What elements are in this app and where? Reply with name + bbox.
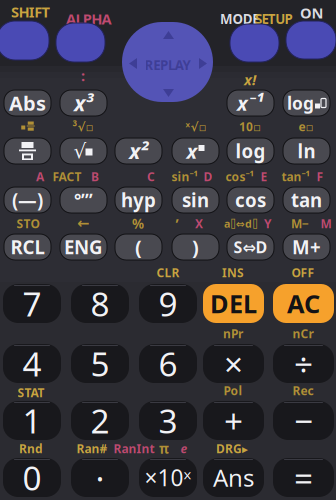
- staticText: cos: [235, 188, 266, 212]
- button[interactable]: x²: [115, 138, 162, 164]
- staticText: log: [287, 91, 314, 114]
- staticText: M−: [291, 215, 309, 231]
- button[interactable]: log: [227, 138, 274, 164]
- staticText: ³√▫: [72, 118, 93, 134]
- staticText: nPr: [223, 325, 243, 341]
- staticText: π: [159, 440, 169, 457]
- button[interactable]: cos: [227, 187, 274, 213]
- staticText: tan⁻¹: [281, 168, 310, 184]
- staticText: log: [235, 139, 265, 163]
- button[interactable]: sin: [172, 187, 219, 213]
- button[interactable]: ln: [283, 138, 330, 164]
- staticText: F: [316, 168, 323, 184]
- button[interactable]: 9: [139, 284, 197, 323]
- button[interactable]: Square root: [60, 138, 107, 164]
- button[interactable]: Replay directional pad: [122, 22, 213, 102]
- button[interactable]: x³: [60, 90, 107, 116]
- staticText: sin⁻¹: [171, 168, 198, 184]
- staticText: %: [132, 215, 144, 232]
- staticText: 6: [158, 341, 177, 386]
- staticText: nCr: [292, 325, 313, 341]
- button[interactable]: 1: [3, 401, 61, 440]
- button[interactable]: 0: [3, 458, 61, 497]
- staticText: Ran#: [76, 440, 107, 456]
- staticText: Ans: [213, 462, 254, 493]
- button[interactable]: +: [203, 401, 264, 440]
- button[interactable]: ÷: [273, 344, 334, 383]
- button[interactable]: ×10ˣ: [139, 458, 197, 497]
- staticText: Y: [264, 215, 272, 231]
- staticText: °’”: [74, 188, 93, 211]
- staticText: −: [294, 398, 313, 443]
- button[interactable]: °’”: [60, 187, 107, 213]
- button[interactable]: AC: [273, 284, 334, 323]
- staticText: ): [192, 234, 199, 260]
- staticText: ˣ√▫: [185, 118, 206, 134]
- button[interactable]: ×: [203, 344, 264, 383]
- staticText: 1: [22, 398, 41, 443]
- button[interactable]: −: [273, 401, 334, 440]
- button[interactable]: ·: [71, 458, 129, 497]
- button[interactable]: S⇔D: [227, 234, 274, 260]
- button[interactable]: Fraction: [4, 138, 51, 164]
- staticText: AC: [287, 287, 320, 320]
- staticText: 0: [22, 455, 41, 500]
- staticText: RCL: [10, 235, 44, 259]
- button[interactable]: RCL: [4, 234, 51, 260]
- staticText: 3: [158, 398, 177, 443]
- button[interactable]: Shift: [0, 21, 49, 60]
- staticText: 2: [90, 398, 109, 443]
- button[interactable]: Alpha: [56, 23, 105, 62]
- staticText: CLR: [156, 264, 179, 280]
- staticText: ×: [224, 341, 243, 386]
- button[interactable]: 7: [3, 284, 61, 323]
- button[interactable]: Power: [172, 138, 219, 164]
- button[interactable]: 5: [71, 344, 129, 383]
- button[interactable]: Mode Setup: [230, 24, 279, 62]
- staticText: (: [135, 234, 142, 260]
- button[interactable]: tan: [283, 187, 330, 213]
- button[interactable]: Abs: [4, 90, 51, 116]
- button[interactable]: ): [172, 234, 219, 260]
- staticText: ALPHA: [66, 9, 112, 28]
- staticText: x²: [129, 137, 148, 165]
- staticText: ×10ˣ: [144, 462, 191, 492]
- button[interactable]: 2: [71, 401, 129, 440]
- staticText: 5: [90, 341, 109, 386]
- button[interactable]: 6: [139, 344, 197, 383]
- button[interactable]: log base: [283, 90, 330, 116]
- button[interactable]: Ans: [203, 458, 264, 497]
- button[interactable]: hyp: [115, 187, 162, 213]
- button[interactable]: M+: [283, 234, 330, 260]
- staticText: hyp: [121, 188, 156, 212]
- staticText: MODE: [220, 10, 259, 28]
- button[interactable]: (—): [4, 187, 51, 213]
- staticText: a⌷⇔d⌷: [224, 216, 258, 231]
- staticText: x³: [74, 89, 93, 117]
- staticText: 7: [22, 281, 41, 326]
- staticText: Rec: [292, 382, 313, 398]
- staticText: ON: [300, 3, 323, 22]
- button[interactable]: x⁻¹: [227, 90, 274, 116]
- staticText: =: [294, 455, 313, 500]
- button[interactable]: 4: [3, 344, 61, 383]
- staticText: FACT: [52, 168, 81, 184]
- button[interactable]: DEL: [203, 284, 264, 323]
- button[interactable]: (: [115, 234, 162, 260]
- staticText: √: [73, 140, 86, 162]
- staticText: M: [320, 215, 331, 231]
- button[interactable]: ENG: [60, 234, 107, 260]
- button[interactable]: =: [273, 458, 334, 497]
- staticText: ←: [77, 215, 89, 232]
- button[interactable]: 8: [71, 284, 129, 323]
- staticText: 9: [158, 281, 177, 326]
- staticText: x!: [244, 70, 256, 89]
- staticText: STO: [16, 215, 39, 231]
- staticText: ’: [175, 214, 178, 233]
- staticText: E: [260, 168, 267, 184]
- staticText: x⁻¹: [237, 90, 264, 116]
- staticText: M+: [292, 235, 321, 259]
- staticText: SETUP: [255, 10, 293, 28]
- button[interactable]: On: [286, 21, 336, 59]
- button[interactable]: 3: [139, 401, 197, 440]
